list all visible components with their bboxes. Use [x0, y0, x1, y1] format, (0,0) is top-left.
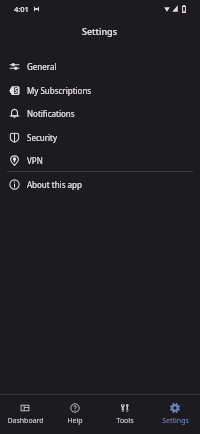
button[interactable]: Security: [0, 125, 200, 149]
button[interactable]: Tools: [100, 403, 150, 426]
button[interactable]: Notifications: [0, 101, 200, 125]
staticText: Dashboard: [7, 416, 44, 426]
button[interactable]: Help: [50, 403, 100, 426]
button[interactable]: General: [0, 54, 200, 78]
staticText: Help: [67, 416, 83, 426]
staticText: About this app: [27, 179, 82, 190]
button[interactable]: My Subscriptions: [0, 78, 200, 102]
staticText: VPN: [27, 155, 43, 166]
button[interactable]: Dashboard: [0, 403, 50, 426]
staticText: Settings: [162, 416, 189, 426]
button[interactable]: Settings: [150, 403, 200, 426]
staticText: Security: [27, 132, 58, 143]
button[interactable]: About this app: [0, 172, 200, 196]
staticText: Notifications: [27, 108, 75, 119]
staticText: 4:01: [14, 4, 29, 14]
staticText: General: [27, 61, 57, 72]
staticText: Settings: [82, 25, 118, 37]
staticText: My Subscriptions: [27, 85, 92, 96]
staticText: Tools: [116, 416, 134, 426]
button[interactable]: VPN: [0, 148, 200, 172]
